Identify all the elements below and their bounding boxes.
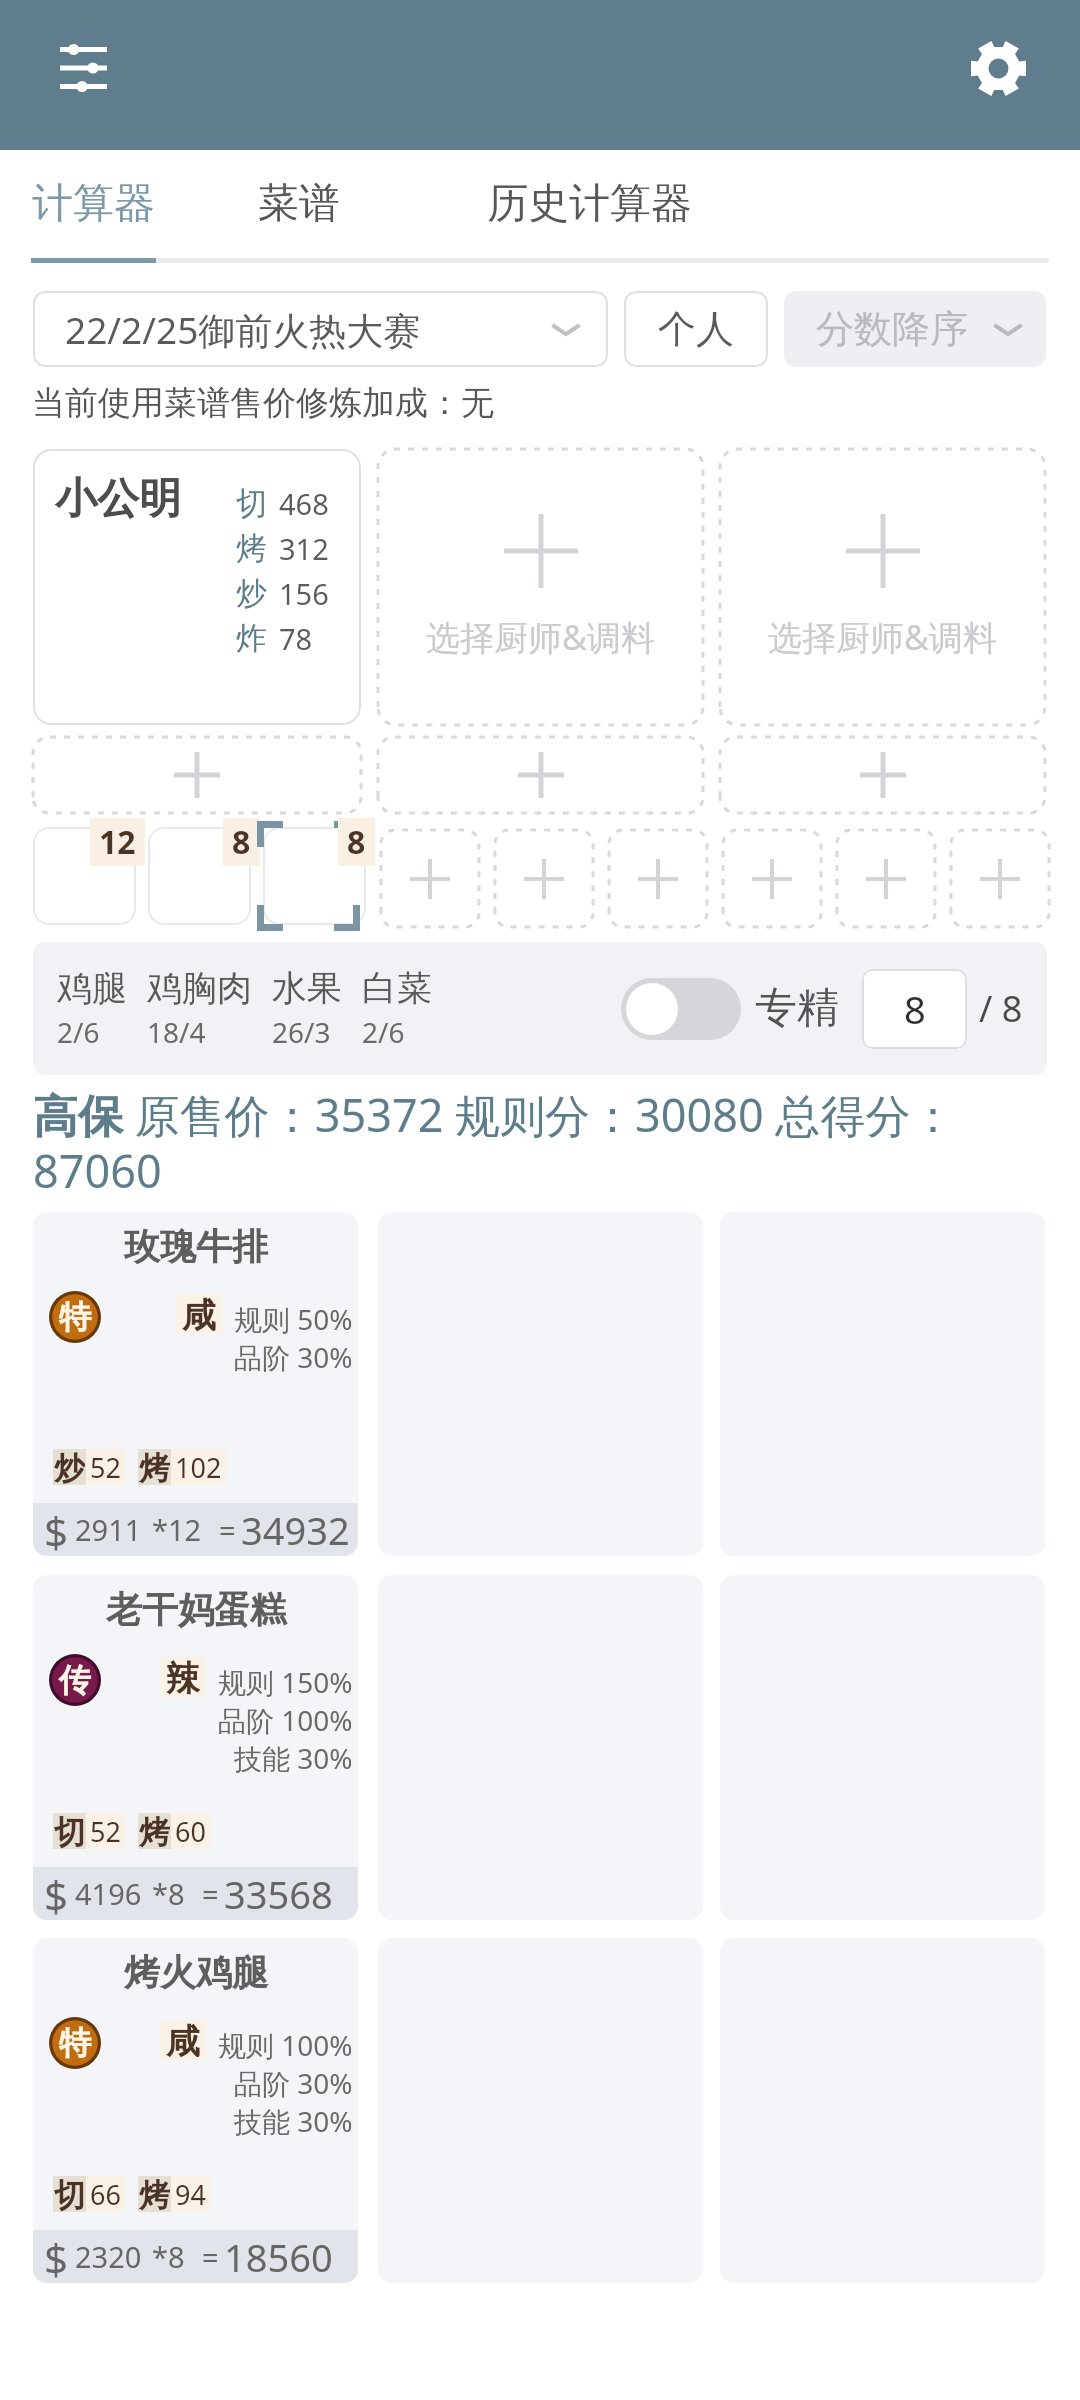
staticText: 烤火鸡腿: [124, 1950, 268, 1995]
staticText: 8: [904, 983, 926, 1035]
staticText: 规则 50%: [234, 1300, 353, 1338]
staticText: 计算器: [32, 178, 155, 230]
staticText: 选择厨师&调料: [426, 614, 655, 660]
staticText: 102: [175, 1449, 222, 1485]
button[interactable]: 选择厨师&调料: [378, 449, 703, 725]
staticText: 鸡腿: [57, 966, 127, 1010]
button[interactable]: [609, 830, 707, 927]
button[interactable]: 计算器: [31, 150, 156, 258]
button[interactable]: Toggle special: [621, 978, 741, 1040]
staticText: 33568: [224, 1868, 333, 1920]
staticText: 52: [90, 1813, 121, 1849]
staticText: 炒: [236, 574, 267, 613]
staticText: 26/3: [272, 1013, 331, 1051]
staticText: 品阶 30%: [234, 1338, 353, 1376]
staticText: 专精: [755, 982, 839, 1035]
staticText: 品阶 100%: [218, 1701, 353, 1739]
staticText: =: [219, 1510, 236, 1549]
staticText: 技能 30%: [234, 1739, 353, 1777]
staticText: 水果: [272, 966, 342, 1010]
staticText: 历史计算器: [487, 178, 692, 230]
staticText: 切: [54, 1813, 85, 1849]
staticText: $: [44, 1503, 69, 1556]
button[interactable]: 个人: [624, 291, 768, 367]
staticText: 切: [54, 2176, 85, 2212]
button[interactable]: [723, 830, 821, 927]
staticText: 312: [279, 529, 329, 568]
staticText: 156: [279, 574, 329, 613]
button[interactable]: [381, 830, 479, 927]
staticText: 白菜: [362, 966, 432, 1010]
staticText: 烤: [139, 1449, 170, 1485]
button[interactable]: [495, 830, 593, 927]
staticText: *8: [152, 2237, 185, 2276]
staticText: 2/6: [362, 1013, 405, 1051]
staticText: 8: [347, 820, 366, 864]
button[interactable]: 菜谱: [236, 150, 362, 258]
staticText: 烤: [236, 529, 267, 568]
button[interactable]: [148, 827, 251, 925]
staticText: 66: [90, 2176, 121, 2212]
staticText: 2911: [75, 1510, 142, 1549]
staticText: =: [202, 2237, 219, 2276]
button[interactable]: [378, 737, 703, 813]
staticText: 78: [279, 619, 313, 658]
staticText: 468: [279, 484, 329, 523]
button[interactable]: 烤火鸡腿: [33, 1938, 358, 2283]
staticText: 8: [232, 820, 251, 864]
button[interactable]: [33, 737, 361, 813]
staticText: *8: [152, 1874, 185, 1913]
staticText: $: [44, 1867, 69, 1920]
staticText: 品阶 30%: [234, 2064, 353, 2102]
staticText: 当前使用菜谱售价修炼加成：无: [32, 382, 494, 424]
button[interactable]: Settings: [955, 25, 1041, 111]
staticText: 2/6: [57, 1013, 100, 1051]
staticText: 咸: [182, 1294, 216, 1334]
staticText: 个人: [658, 305, 734, 353]
staticText: 烤: [139, 2176, 170, 2212]
staticText: 咸: [166, 2020, 200, 2060]
staticText: 分数降序: [816, 305, 968, 353]
staticText: 老干妈蛋糕: [106, 1587, 286, 1632]
staticText: 特: [59, 2023, 91, 2063]
button[interactable]: [951, 830, 1049, 927]
staticText: 小公明: [55, 473, 181, 526]
button[interactable]: 玫瑰牛排: [33, 1212, 358, 1556]
button[interactable]: [720, 737, 1045, 813]
button[interactable]: [33, 827, 136, 925]
staticText: *12: [152, 1510, 202, 1549]
button[interactable]: 8: [862, 969, 967, 1049]
button[interactable]: 选择厨师&调料: [720, 449, 1045, 725]
staticText: / 8: [979, 984, 1023, 1033]
button[interactable]: Filter settings: [43, 28, 123, 108]
staticText: 34932: [241, 1504, 350, 1556]
staticText: 辣: [166, 1657, 200, 1697]
staticText: 60: [175, 1813, 206, 1849]
button[interactable]: 历史计算器: [483, 150, 695, 258]
staticText: 52: [90, 1449, 121, 1485]
button[interactable]: 22/2/25御前火热大赛: [33, 291, 608, 367]
button[interactable]: [837, 830, 935, 927]
button[interactable]: 小公明: [33, 449, 361, 725]
staticText: 烤: [139, 1813, 170, 1849]
staticText: 4196: [75, 1874, 142, 1913]
staticText: 传: [59, 1660, 91, 1700]
staticText: 炒: [54, 1449, 85, 1485]
staticText: 22/2/25御前火热大赛: [65, 304, 421, 355]
staticText: =: [202, 1874, 219, 1913]
staticText: 炸: [236, 619, 267, 658]
staticText: 94: [175, 2176, 206, 2212]
staticText: 12: [99, 820, 136, 864]
staticText: 18560: [224, 2231, 333, 2283]
button[interactable]: 老干妈蛋糕: [33, 1575, 358, 1920]
button[interactable]: [263, 827, 366, 925]
staticText: 规则 100%: [218, 2026, 353, 2064]
button[interactable]: 分数降序: [784, 291, 1046, 367]
staticText: 菜谱: [258, 178, 340, 230]
